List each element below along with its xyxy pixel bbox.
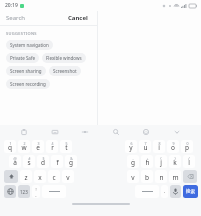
staticText: d [41,158,45,167]
button[interactable]: Screen sharing [6,66,46,76]
staticText: 20:19 [5,2,18,9]
button[interactable]: 9 [167,140,179,153]
button[interactable]: Search [6,14,65,22]
button[interactable]: 0 [181,140,193,153]
staticText: Cancel [68,14,88,22]
button[interactable]: Search [183,185,198,198]
staticText: k [173,158,177,167]
button[interactable]: Space [42,185,66,198]
button[interactable]: . [161,185,168,198]
button[interactable]: ) [169,155,181,168]
staticText: g [131,158,135,167]
staticText: / [188,156,190,161]
button[interactable]: Collapse keyboard [171,126,183,138]
button[interactable]: # [23,155,35,168]
staticText: s [27,158,31,167]
button[interactable]: @ [9,155,21,168]
staticText: i [158,143,160,152]
staticText: ) [174,156,176,161]
staticText: - [132,156,134,161]
button[interactable]: v [62,170,74,183]
button[interactable]: 8 [153,140,165,153]
staticText: w [21,143,27,152]
button[interactable]: Backspace [183,170,197,183]
staticText: @ [13,156,17,161]
staticText: c [52,173,56,182]
staticText: 9 [172,141,175,146]
button[interactable]: System navigation [6,40,53,50]
button[interactable]: m [169,170,181,183]
staticText: Screen sharing [10,68,42,74]
button[interactable]: Screen recording [6,79,50,89]
staticText: g [69,158,73,167]
staticText: v [131,173,135,182]
button[interactable]: Emoji [140,126,152,138]
staticText: 8 [158,141,161,146]
staticText: # [28,156,31,161]
button[interactable]: 2 [18,140,30,153]
button[interactable]: ( [155,155,167,168]
staticText: x [38,173,42,182]
staticText: 5 [65,141,68,146]
button[interactable]: Flexible windows [42,53,86,63]
button[interactable]: 6 [125,140,137,153]
button[interactable]: n [155,170,167,183]
staticText: 4 [51,141,54,146]
button[interactable]: Text editing [79,126,91,138]
button[interactable]: 3 [32,140,44,153]
staticText: m [172,173,179,182]
button[interactable]: Cancel [65,13,91,23]
staticText: z [24,173,28,182]
button[interactable]: Shift [4,170,18,183]
staticText: Screenshot [53,68,77,74]
staticText: Private Safe [10,55,35,61]
staticText: 2 [23,141,26,146]
button[interactable]: 7 [139,140,151,153]
staticText: + [146,156,149,161]
button[interactable]: Screenshot [49,66,81,76]
button[interactable]: & [65,155,77,168]
staticText: j [160,158,162,167]
button[interactable]: Change language [4,185,16,198]
button[interactable]: 5 [60,140,72,153]
button[interactable]: _ [51,155,63,168]
button[interactable]: ! , [32,185,40,198]
staticText: v [66,173,70,182]
button[interactable]: 4 [46,140,58,153]
staticText: n [159,173,164,182]
staticText: t [65,143,68,152]
staticText: 3 [37,141,40,146]
staticText: System navigation [10,42,49,48]
staticText: y [129,143,133,152]
button[interactable]: Private Safe [6,53,39,63]
staticText: . [164,188,166,195]
staticText: 7 [144,141,147,146]
staticText: 6 [130,141,133,146]
staticText: f [56,158,59,167]
button[interactable]: Voice input [170,185,181,198]
staticText: Screen recording [10,81,46,87]
button[interactable]: + [141,155,153,168]
button[interactable]: Search [110,126,122,138]
button[interactable]: - [127,155,139,168]
button[interactable]: Space [135,185,159,198]
button[interactable]: z [20,170,32,183]
staticText: & [70,156,73,161]
staticText: 搜索 [186,189,195,195]
staticText: Flexible windows [46,55,82,61]
staticText: o [171,143,175,152]
staticText: l [188,158,190,167]
button[interactable]: 123 [18,185,30,198]
button[interactable]: Clipboard [18,126,30,138]
staticText: 1 [9,141,12,146]
staticText: b [145,173,149,182]
staticText: Search [6,14,25,22]
button[interactable]: 1 [4,140,16,153]
button[interactable]: v [127,170,139,183]
button[interactable]: / [183,155,195,168]
button[interactable]: x [34,170,46,183]
button[interactable]: $ [37,155,49,168]
button[interactable]: b [141,170,153,183]
button[interactable]: Keyboard layout [49,126,61,138]
button[interactable]: c [48,170,60,183]
